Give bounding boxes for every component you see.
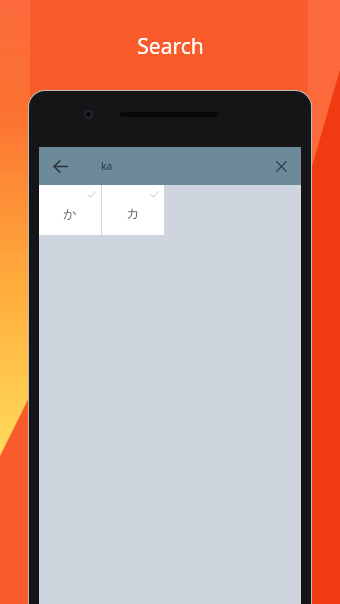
- staticText: か: [63, 205, 77, 221]
- button[interactable]: カ: [102, 185, 164, 235]
- button[interactable]: Back: [39, 147, 81, 185]
- button[interactable]: ka: [81, 147, 261, 185]
- staticText: ka: [101, 159, 113, 173]
- button[interactable]: か: [39, 185, 101, 235]
- button[interactable]: Clear search: [261, 147, 301, 185]
- staticText: Search: [137, 32, 204, 61]
- staticText: カ: [126, 205, 140, 221]
